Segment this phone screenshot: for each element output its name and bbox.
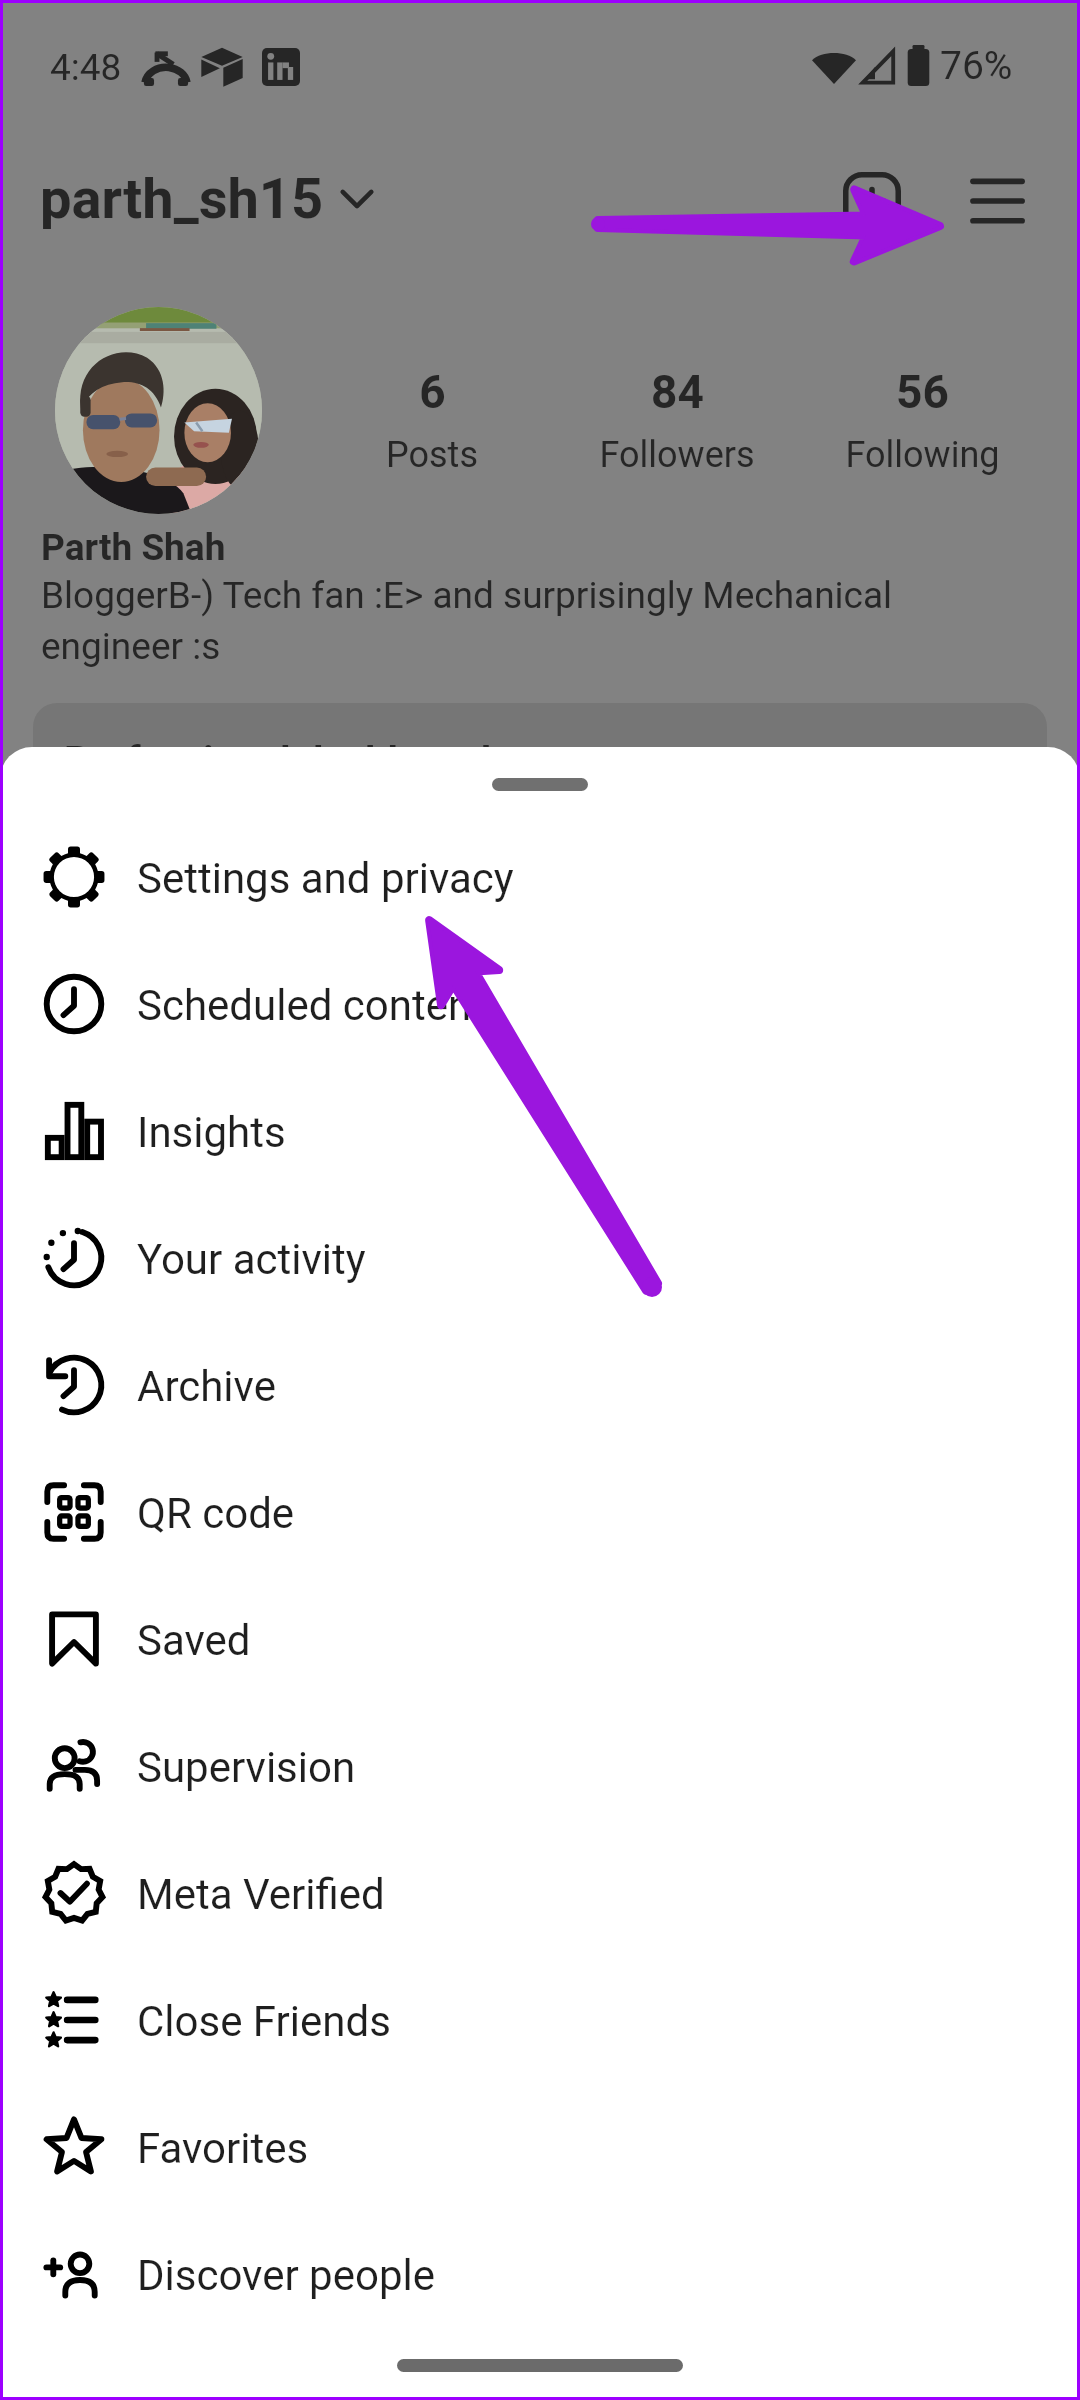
staticText: Professional dashboard	[64, 738, 492, 785]
button[interactable]: 84	[527, 365, 827, 476]
button[interactable]: Discover people	[0, 2212, 1080, 2339]
staticText: Favorites	[137, 2124, 309, 2173]
button[interactable]: parth_sh15	[40, 166, 374, 232]
staticText: Insights	[137, 1108, 286, 1157]
button[interactable]: QR code	[0, 1450, 1080, 1577]
staticText: Followers	[599, 434, 755, 476]
staticText: Your activity	[137, 1235, 366, 1284]
staticText: Parth Shah	[41, 526, 226, 569]
staticText: Following	[845, 434, 1000, 476]
staticText: QR code	[137, 1489, 295, 1538]
staticText: 76%	[940, 43, 1013, 89]
staticText: parth_sh15	[40, 166, 324, 232]
staticText: Meta Verified	[137, 1870, 385, 1919]
button[interactable]: Archive	[0, 1323, 1080, 1450]
button[interactable]: Supervision	[0, 1704, 1080, 1831]
staticText: Close Friends	[137, 1997, 391, 2046]
staticText: Saved	[137, 1616, 251, 1665]
staticText: Archive	[137, 1362, 276, 1411]
button[interactable]: Settings and privacy	[0, 815, 1080, 942]
button[interactable]: Scheduled content	[0, 942, 1080, 1069]
button[interactable]: Your activity	[0, 1196, 1080, 1323]
button[interactable]: Insights	[0, 1069, 1080, 1196]
button[interactable]: Menu	[970, 174, 1024, 228]
staticText: Settings and privacy	[137, 854, 514, 903]
staticText: BloggerB-) Tech fan :E> and surprisingly…	[41, 574, 893, 668]
staticText: 4:48	[50, 46, 122, 89]
staticText: 56	[896, 365, 949, 419]
button[interactable]: Favorites	[0, 2085, 1080, 2212]
button[interactable]: Meta Verified	[0, 1831, 1080, 1958]
staticText: Supervision	[137, 1743, 356, 1792]
button[interactable]: Saved	[0, 1577, 1080, 1704]
staticText: 6	[419, 365, 446, 419]
button[interactable]: Profile photo	[55, 307, 262, 514]
button[interactable]: Professional dashboard	[33, 703, 1047, 873]
button[interactable]: New post	[843, 172, 901, 230]
staticText: 84	[651, 365, 704, 419]
staticText: Posts	[386, 434, 478, 476]
staticText: Scheduled content	[137, 981, 485, 1030]
button[interactable]: Close Friends	[0, 1958, 1080, 2085]
button[interactable]: 6	[282, 365, 582, 476]
staticText: Discover people	[137, 2251, 435, 2300]
button[interactable]: 56	[772, 365, 1072, 476]
